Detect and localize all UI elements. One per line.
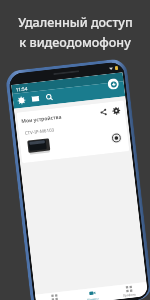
button[interactable]: Профиль	[110, 282, 148, 300]
button[interactable]: Share	[97, 106, 108, 117]
staticText: Профиль	[123, 292, 137, 298]
button[interactable]: Устройства	[35, 290, 74, 300]
staticText: Камеры	[87, 296, 99, 300]
staticText: 11:54	[15, 85, 28, 92]
button[interactable]: Settings	[110, 105, 121, 116]
button[interactable]: Search	[44, 92, 54, 102]
staticText: к видеодомофону	[19, 34, 131, 51]
staticText: CTV-IP-M6103	[24, 126, 55, 136]
staticText: Мои устройства	[21, 113, 63, 125]
button[interactable]: Record	[25, 128, 123, 157]
staticText: Удаленный доступ	[18, 14, 133, 31]
button[interactable]: Menu	[17, 95, 27, 105]
button[interactable]: Камеры	[73, 286, 111, 300]
button[interactable]: Record	[110, 132, 122, 144]
button[interactable]: Add device	[107, 78, 119, 90]
button[interactable]: Messages	[30, 94, 40, 104]
